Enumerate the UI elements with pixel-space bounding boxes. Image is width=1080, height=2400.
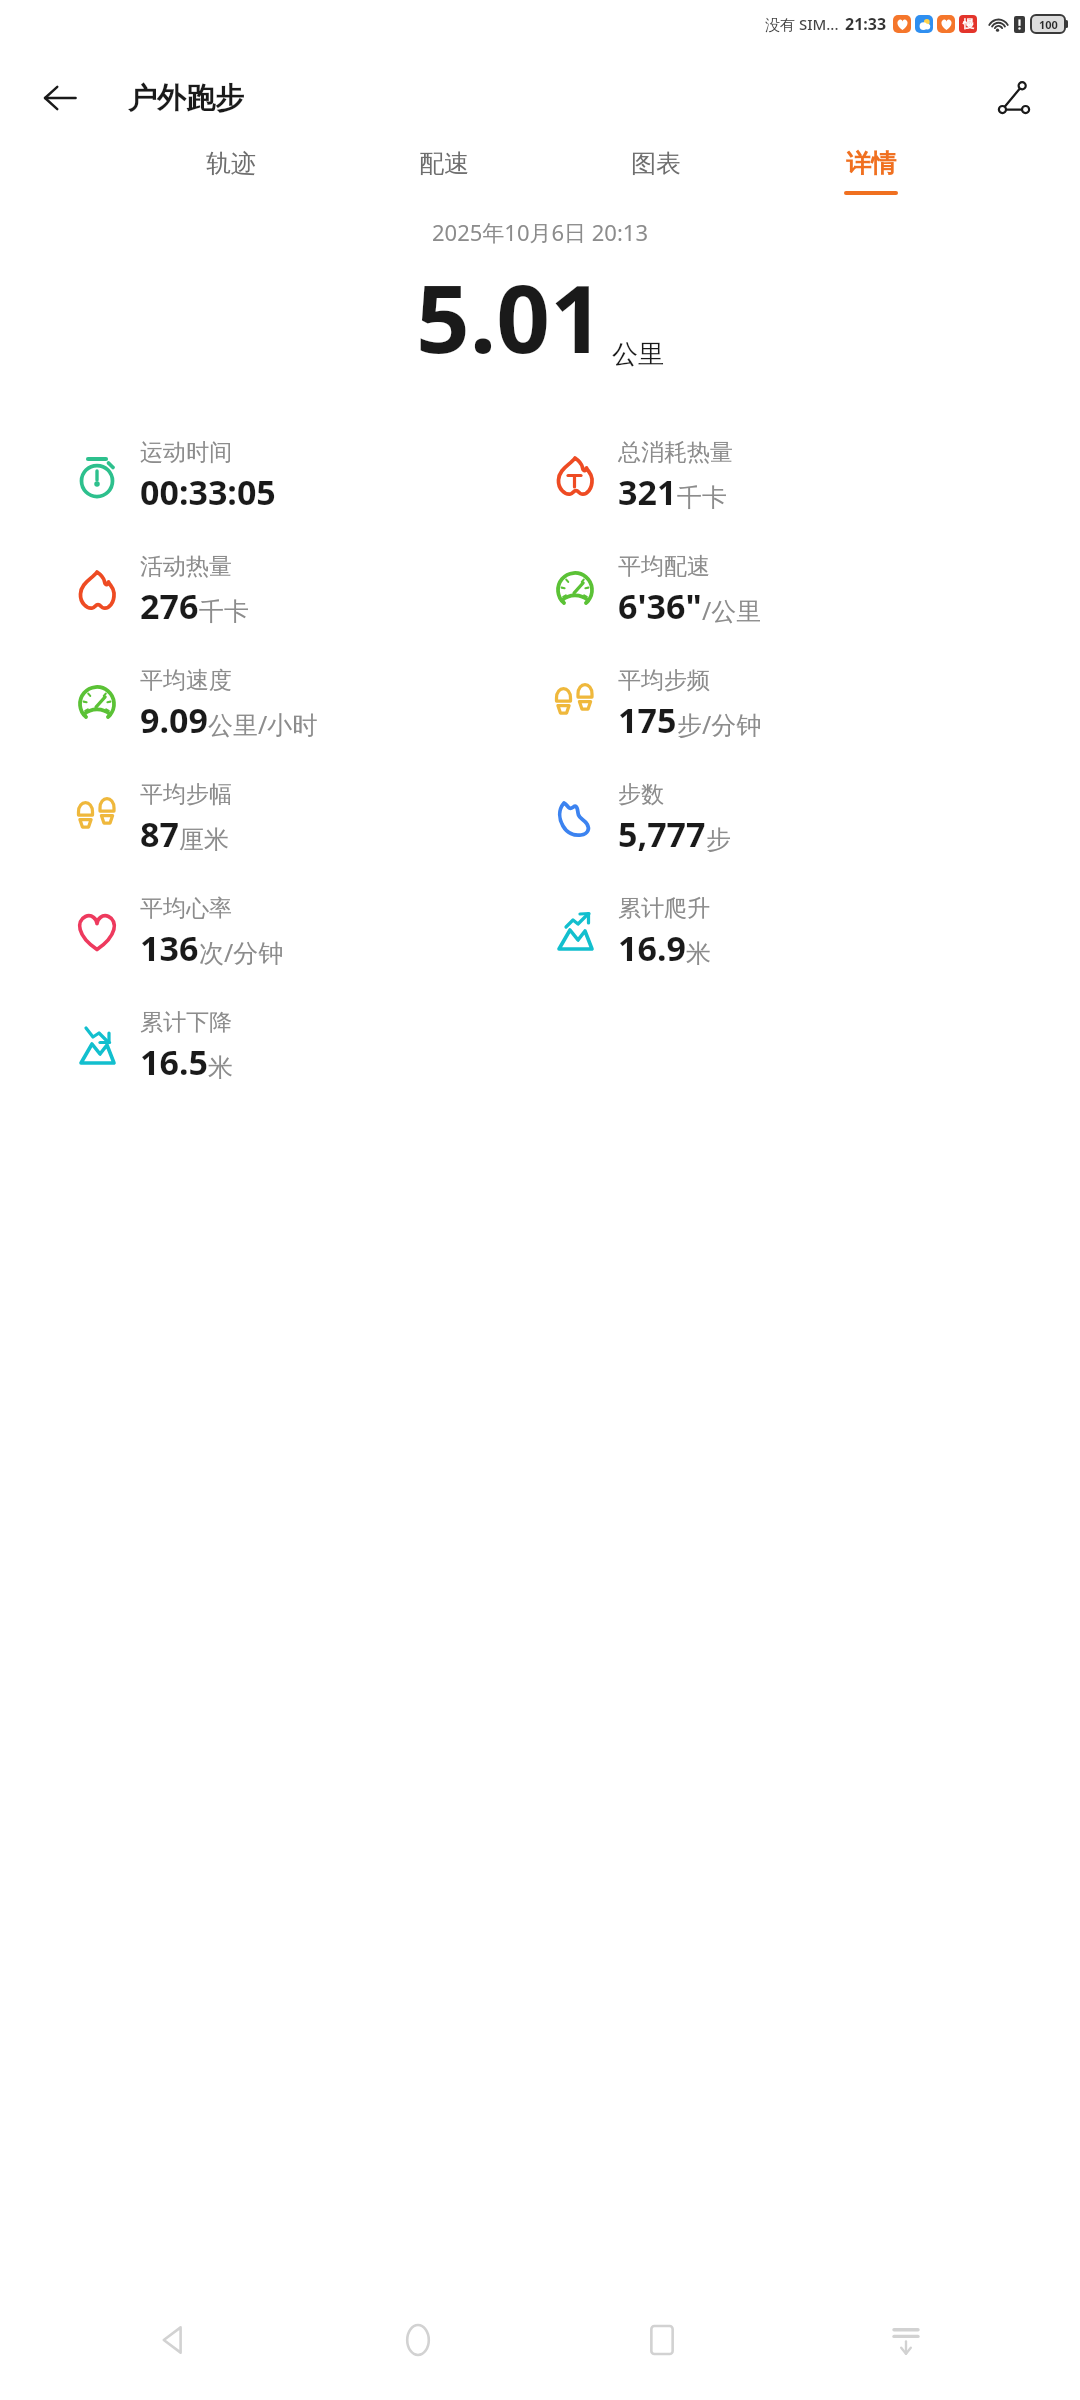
button[interactable]: 详情 bbox=[838, 148, 904, 195]
staticText: 平均步幅 bbox=[140, 780, 232, 809]
button[interactable]: 返回 bbox=[30, 68, 90, 128]
staticText: 175 bbox=[618, 697, 677, 743]
staticText: 配速 bbox=[419, 148, 469, 179]
staticText: 87 bbox=[140, 811, 179, 857]
button[interactable]: 累计下降 bbox=[72, 989, 540, 1103]
staticText: 轨迹 bbox=[206, 148, 256, 179]
staticText: 步/分钟 bbox=[677, 707, 762, 741]
staticText: 2025年10月6日 20:13 bbox=[0, 217, 1080, 247]
staticText: 千卡 bbox=[677, 482, 727, 513]
button[interactable]: 返回 bbox=[140, 2306, 208, 2374]
staticText: 16.5 bbox=[140, 1039, 208, 1085]
button[interactable]: 平均心率 bbox=[72, 875, 540, 989]
staticText: 厘米 bbox=[179, 824, 229, 855]
staticText: 公里/小时 bbox=[208, 707, 318, 741]
button[interactable]: 分享 bbox=[982, 66, 1046, 130]
button[interactable]: 配速 bbox=[413, 148, 475, 195]
staticText: 6'36" bbox=[618, 583, 702, 629]
button[interactable]: 平均步幅 bbox=[72, 761, 540, 875]
button[interactable]: 最近任务 bbox=[628, 2306, 696, 2374]
staticText: 公里 bbox=[612, 338, 664, 371]
staticText: 21:33 bbox=[845, 13, 887, 35]
staticText: 累计爬升 bbox=[618, 894, 710, 923]
button[interactable]: 轨迹 bbox=[200, 148, 262, 195]
staticText: 平均心率 bbox=[140, 894, 232, 923]
staticText: 步 bbox=[706, 824, 731, 855]
button[interactable]: 运动时间 bbox=[72, 419, 540, 533]
staticText: 16.9 bbox=[618, 925, 686, 971]
button[interactable]: 图表 bbox=[625, 148, 687, 195]
staticText: 9.09 bbox=[140, 697, 208, 743]
staticText: 5.01 bbox=[416, 253, 604, 381]
staticText: 平均步频 bbox=[618, 666, 710, 695]
staticText: 累计下降 bbox=[140, 1008, 232, 1037]
staticText: 00:33:05 bbox=[140, 469, 276, 515]
staticText: 运动时间 bbox=[140, 438, 232, 467]
button[interactable]: 主屏幕 bbox=[384, 2306, 452, 2374]
staticText: 276 bbox=[140, 583, 199, 629]
button[interactable]: 步数 bbox=[550, 761, 1080, 875]
staticText: 136 bbox=[140, 925, 199, 971]
staticText: 没有 SIM... bbox=[765, 14, 839, 34]
button[interactable]: 收起 bbox=[872, 2306, 940, 2374]
staticText: 图表 bbox=[631, 148, 681, 179]
button[interactable]: 平均步频 bbox=[550, 647, 1080, 761]
button[interactable]: 平均配速 bbox=[550, 533, 1080, 647]
staticText: 平均配速 bbox=[618, 552, 710, 581]
button[interactable]: 累计爬升 bbox=[550, 875, 1080, 989]
staticText: 米 bbox=[686, 938, 711, 969]
staticText: 次/分钟 bbox=[199, 935, 284, 969]
staticText: 321 bbox=[618, 469, 677, 515]
staticText: 5,777 bbox=[618, 811, 706, 857]
button[interactable]: 活动热量 bbox=[72, 533, 540, 647]
staticText: 户外跑步 bbox=[128, 80, 244, 117]
staticText: 100 bbox=[1039, 17, 1058, 32]
staticText: 总消耗热量 bbox=[618, 438, 733, 467]
staticText: 米 bbox=[208, 1052, 233, 1083]
staticText: 步数 bbox=[618, 780, 664, 809]
button[interactable]: 平均速度 bbox=[72, 647, 540, 761]
staticText: 平均速度 bbox=[140, 666, 232, 695]
staticText: /公里 bbox=[702, 593, 762, 627]
staticText: 详情 bbox=[846, 148, 896, 179]
button[interactable]: 总消耗热量 bbox=[550, 419, 1080, 533]
staticText: 慢 bbox=[963, 17, 974, 31]
staticText: 千卡 bbox=[199, 596, 249, 627]
staticText: 活动热量 bbox=[140, 552, 232, 581]
